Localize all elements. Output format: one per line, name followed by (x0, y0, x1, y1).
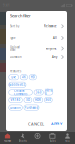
button[interactable]: HD (29, 74, 36, 80)
button[interactable]: Location (9, 105, 22, 110)
button[interactable]: Create (30, 132, 45, 144)
staticText: 360 (45, 98, 51, 102)
staticText: Shorts (18, 139, 26, 143)
button[interactable]: 4K (20, 74, 28, 80)
staticText: CANCEL (28, 121, 44, 126)
button[interactable]: Creative Commons (9, 90, 32, 95)
staticText: Creative Commons (14, 89, 27, 96)
button[interactable]: HDR (33, 97, 43, 103)
button[interactable]: 3D (24, 97, 32, 103)
staticText: Subs (49, 139, 55, 143)
staticText: Duration (10, 55, 22, 59)
staticText: Anytime (46, 47, 57, 50)
staticText: Type (10, 36, 16, 40)
staticText: 4K (22, 75, 26, 79)
staticText: Upload (10, 45, 20, 49)
staticText: VR180 (10, 98, 20, 102)
staticText: Subtitles/CC (9, 83, 26, 86)
staticText: 360 (36, 91, 42, 94)
staticText: HD (31, 75, 35, 79)
staticText: APPLY (51, 121, 62, 126)
staticText: date (10, 48, 16, 52)
staticText: 3D (26, 98, 30, 102)
staticText: Sort by (10, 24, 19, 28)
staticText: Purchased (24, 106, 38, 109)
button[interactable]: You (60, 132, 75, 144)
staticText: You (65, 139, 70, 143)
staticText: Search filter (10, 13, 31, 18)
staticText: Features (10, 69, 21, 73)
staticText: VR180 (45, 89, 53, 96)
button[interactable]: Subs (45, 132, 60, 144)
button[interactable]: Live (9, 74, 19, 80)
staticText: All (53, 36, 57, 40)
button[interactable]: VR180 (9, 97, 22, 103)
button[interactable]: Purchased (24, 105, 39, 110)
button[interactable]: 360 (34, 90, 43, 95)
button[interactable]: Duration (6, 53, 67, 61)
button[interactable]: Subtitles/CC (9, 82, 26, 87)
staticText: Live (11, 75, 16, 79)
button[interactable]: APPLY (49, 120, 64, 128)
button[interactable]: Upload (6, 44, 67, 53)
staticText: Relevance (44, 24, 57, 28)
button[interactable]: 360 (44, 97, 52, 103)
staticText: Location (10, 106, 21, 109)
staticText: Home (3, 139, 11, 143)
staticText: HDR (35, 98, 41, 102)
button[interactable]: VR180 (45, 90, 53, 95)
button[interactable]: Type (6, 32, 67, 44)
button[interactable]: Sort by (6, 20, 67, 32)
button[interactable]: Shorts (15, 132, 30, 144)
staticText: Any (52, 55, 57, 59)
staticText: 9:41 (3, 4, 10, 7)
button[interactable]: CANCEL (26, 120, 46, 128)
button[interactable]: Home (0, 132, 15, 144)
